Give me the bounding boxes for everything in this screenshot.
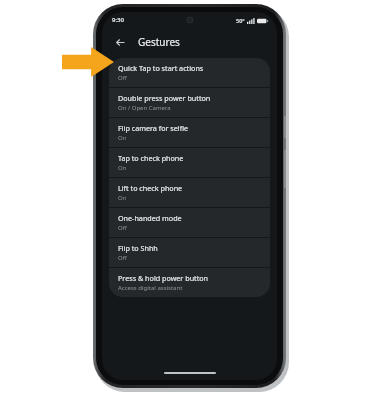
staticText: On (118, 164, 127, 172)
staticText: Lift to check phone (118, 183, 183, 193)
staticText: Flip to Shhh (118, 243, 158, 253)
staticText: Quick Tap to start actions (118, 63, 204, 73)
staticText: Flip camera for selfie (118, 123, 189, 133)
staticText: Double press power button (118, 93, 211, 103)
button[interactable]: Press & hold power button (109, 268, 270, 297)
button[interactable]: One-handed mode (109, 208, 270, 237)
button[interactable]: Flip to Shhh (109, 238, 270, 267)
staticText: Press & hold power button (118, 273, 209, 283)
staticText: Tap to check phone (118, 153, 184, 163)
staticText: On (118, 194, 127, 202)
button[interactable]: Quick Tap to start actions (109, 58, 270, 87)
staticText: Off (118, 224, 127, 232)
staticText: Access digital assistant (118, 284, 183, 292)
other: Pointer arrow (62, 47, 114, 77)
staticText: On / Open Camera (118, 104, 171, 112)
button[interactable]: Lift to check phone (109, 178, 270, 207)
staticText: Gestures (138, 35, 180, 49)
button[interactable]: Double press power button (109, 88, 270, 117)
button[interactable]: Tap to check phone (109, 148, 270, 177)
staticText: Off (118, 254, 127, 262)
button[interactable]: Back (110, 32, 130, 52)
staticText: 50° (236, 17, 245, 24)
staticText: On (118, 134, 127, 142)
button[interactable]: Flip camera for selfie (109, 118, 270, 147)
staticText: Off (118, 74, 127, 82)
staticText: One-handed mode (118, 213, 182, 223)
staticText: 9:30 (112, 16, 124, 24)
